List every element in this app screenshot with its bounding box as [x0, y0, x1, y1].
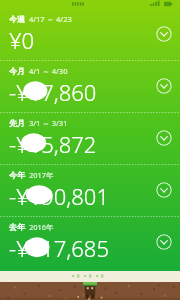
- button[interactable]: 今年: [0, 164, 180, 216]
- staticText: 4/17 ～ 4/23: [29, 14, 72, 24]
- staticText: 4/1 ～ 4/30: [29, 66, 68, 76]
- button[interactable]: Expand 去年: [156, 234, 172, 250]
- button[interactable]: 先月: [0, 112, 180, 164]
- staticText: -¥190,801: [9, 181, 109, 211]
- button[interactable]: 今月: [0, 60, 180, 112]
- staticText: 去年: [9, 222, 25, 232]
- button[interactable]: 今週: [0, 8, 180, 60]
- staticText: 先月: [9, 118, 25, 128]
- staticText: ¥0: [9, 25, 35, 55]
- staticText: 3/1 ～ 3/31: [29, 118, 68, 128]
- button[interactable]: Expand 今月: [156, 78, 172, 94]
- staticText: 今月: [9, 66, 25, 76]
- staticText: -¥15,872: [9, 129, 97, 159]
- staticText: 今年: [9, 170, 25, 180]
- button[interactable]: Expand 先月: [156, 130, 172, 146]
- button[interactable]: 去年: [0, 216, 180, 268]
- button[interactable]: Expand 今週: [156, 26, 172, 42]
- staticText: 2017年: [29, 170, 54, 180]
- staticText: 2016年: [29, 222, 54, 232]
- button[interactable]: Expand 今年: [156, 182, 172, 198]
- staticText: -¥117,685: [9, 233, 109, 263]
- staticText: 今週: [9, 14, 25, 24]
- staticText: -¥17,860: [9, 77, 97, 107]
